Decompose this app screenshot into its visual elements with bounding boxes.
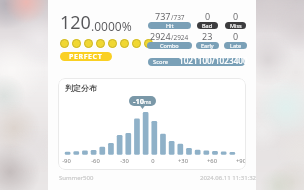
- staticText: /737: [171, 13, 185, 22]
- staticText: Summer500: [59, 174, 94, 182]
- staticText: 0: [151, 157, 155, 165]
- staticText: Combo: [160, 42, 179, 49]
- staticText: 判定分布: [65, 83, 97, 93]
- button[interactable]: 0: [224, 30, 247, 49]
- staticText: 737: [155, 10, 171, 22]
- button[interactable]: Score: [148, 58, 245, 66]
- staticText: -10: [133, 96, 144, 106]
- staticText: /2924: [171, 33, 189, 42]
- button[interactable]: PERFECT: [60, 52, 112, 61]
- staticText: 1021100/1023400: [179, 55, 248, 66]
- button[interactable]: 0: [225, 10, 246, 29]
- staticText: Late: [230, 42, 242, 49]
- staticText: 0: [233, 10, 239, 22]
- staticText: Miss: [230, 22, 242, 29]
- staticText: -90: [62, 157, 71, 165]
- staticText: Score: [153, 58, 169, 66]
- staticText: PERFECT: [69, 52, 103, 61]
- staticText: 0: [233, 30, 239, 42]
- staticText: 23: [202, 30, 213, 42]
- staticText: +60: [207, 157, 217, 165]
- button[interactable]: 2924: [147, 30, 192, 49]
- staticText: 120: [60, 10, 91, 35]
- staticText: ms: [144, 99, 152, 106]
- staticText: +30: [178, 157, 188, 165]
- staticText: .0000%: [91, 18, 132, 34]
- staticText: 0: [205, 10, 211, 22]
- staticText: Early: [201, 42, 214, 49]
- staticText: 2024.06.11 11:31:32: [200, 174, 257, 182]
- staticText: Bad: [202, 22, 213, 29]
- button[interactable]: 0: [197, 10, 218, 29]
- staticText: Hit: [166, 22, 174, 29]
- staticText: 2924: [150, 30, 171, 42]
- button[interactable]: 23: [196, 30, 219, 49]
- button[interactable]: 737: [148, 10, 191, 29]
- staticText: +90: [236, 157, 246, 165]
- staticText: -30: [120, 157, 129, 165]
- staticText: -60: [91, 157, 100, 165]
